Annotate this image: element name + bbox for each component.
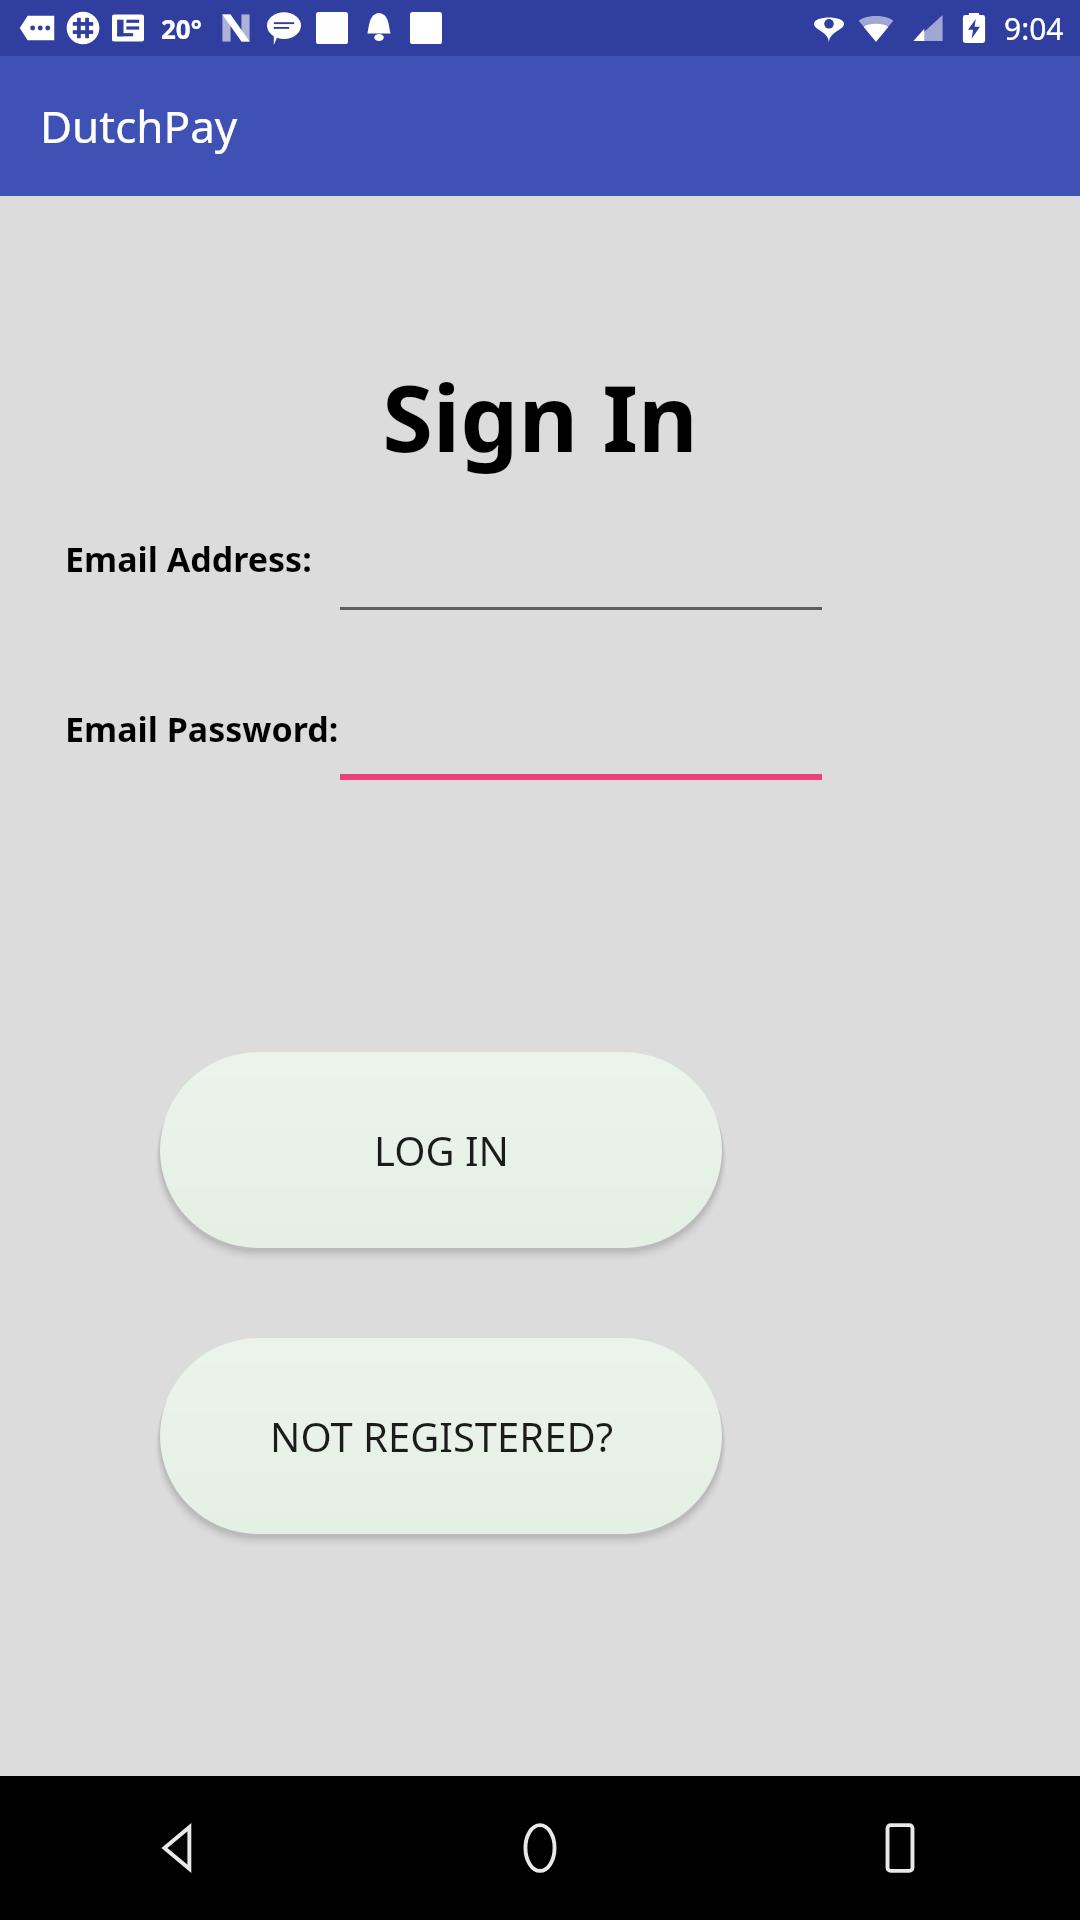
button[interactable]: LOG IN <box>160 1052 722 1248</box>
staticText: LOG IN <box>374 1123 509 1177</box>
staticText: DutchPay <box>40 96 238 156</box>
staticText: Sign In <box>0 354 1080 479</box>
button[interactable]: Home <box>360 1776 720 1920</box>
button[interactable] <box>340 702 822 780</box>
button[interactable]: Back <box>0 1776 360 1920</box>
staticText: 9:04 <box>1004 8 1064 49</box>
button[interactable] <box>340 532 822 610</box>
staticText: NOT REGISTERED? <box>270 1409 613 1463</box>
staticText: Email Address: <box>65 536 312 582</box>
staticText: 20° <box>161 11 202 46</box>
staticText: Email Password: <box>65 706 339 752</box>
button[interactable]: Recent apps <box>720 1776 1080 1920</box>
button[interactable]: NOT REGISTERED? <box>160 1338 722 1534</box>
